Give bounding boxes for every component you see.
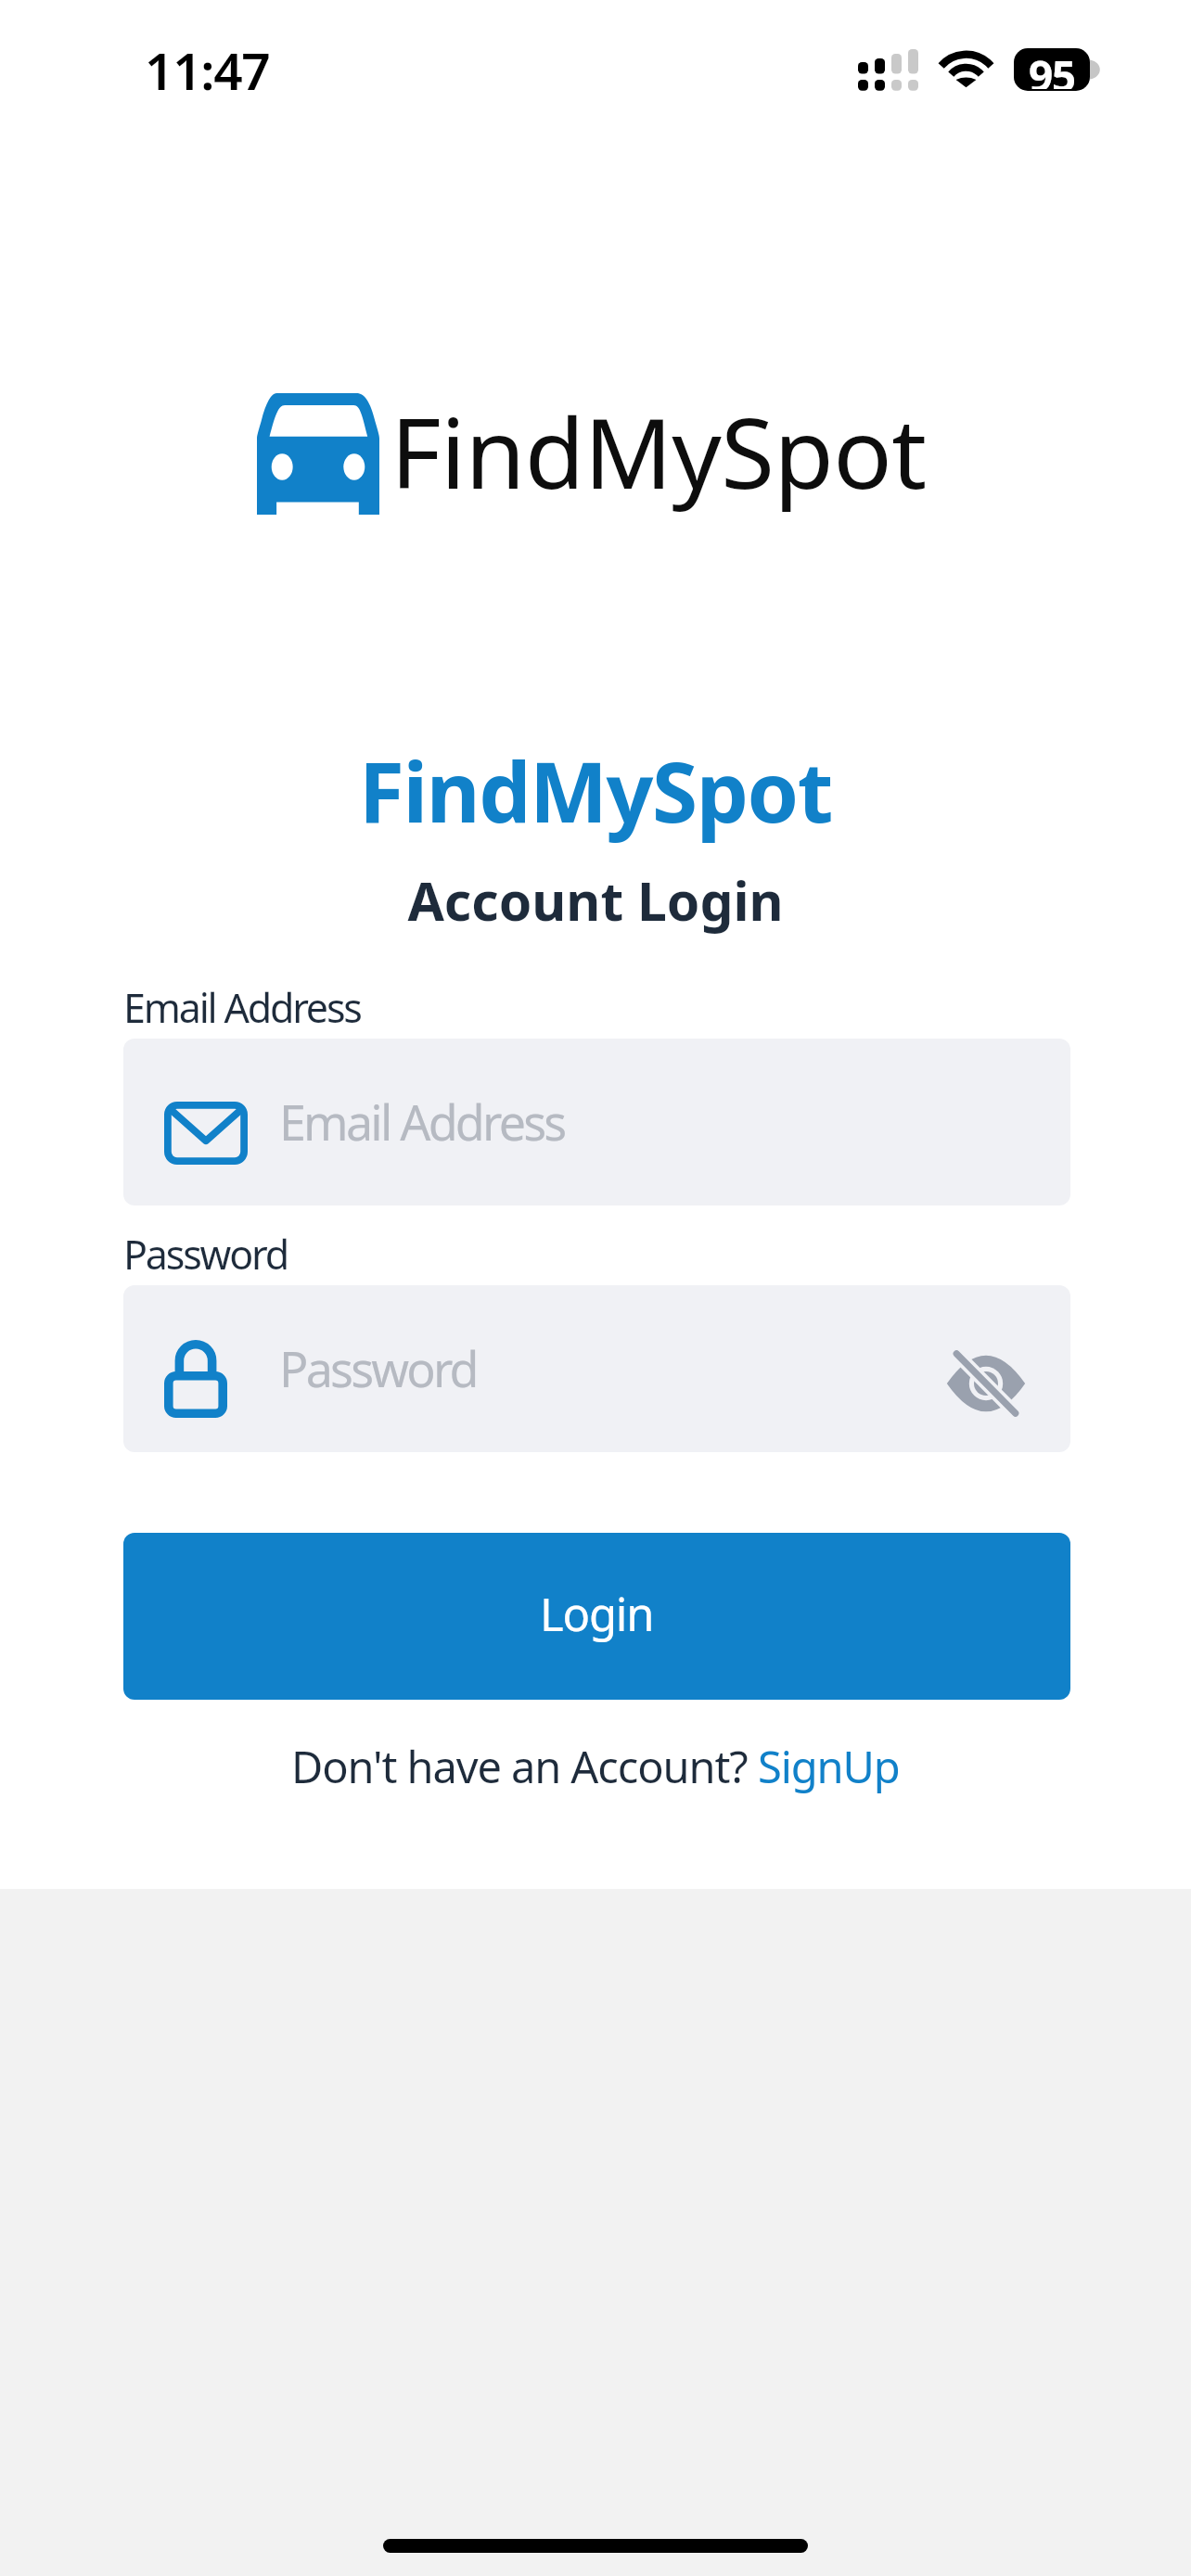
staticText: Password	[123, 1227, 288, 1282]
staticText: 95	[1029, 48, 1075, 89]
staticText: SignUp	[758, 1737, 900, 1796]
staticText: Email Address	[123, 980, 361, 1035]
button[interactable]: Password	[123, 1285, 1070, 1452]
staticText: Account Login	[0, 864, 1191, 937]
staticText: FindMySpot	[391, 385, 927, 517]
button[interactable]: Login	[123, 1533, 1070, 1700]
staticText: 11:47	[145, 35, 270, 105]
staticText: Login	[540, 1583, 654, 1645]
button[interactable]: Sign up	[758, 1737, 900, 1796]
staticText: Don't have an Account?	[291, 1737, 758, 1796]
staticText: Email Address	[279, 1089, 565, 1154]
button[interactable]: Show password	[946, 1351, 1026, 1416]
button[interactable]: Email Address	[123, 1039, 1070, 1205]
staticText: Password	[279, 1335, 477, 1401]
staticText: FindMySpot	[0, 734, 1191, 847]
